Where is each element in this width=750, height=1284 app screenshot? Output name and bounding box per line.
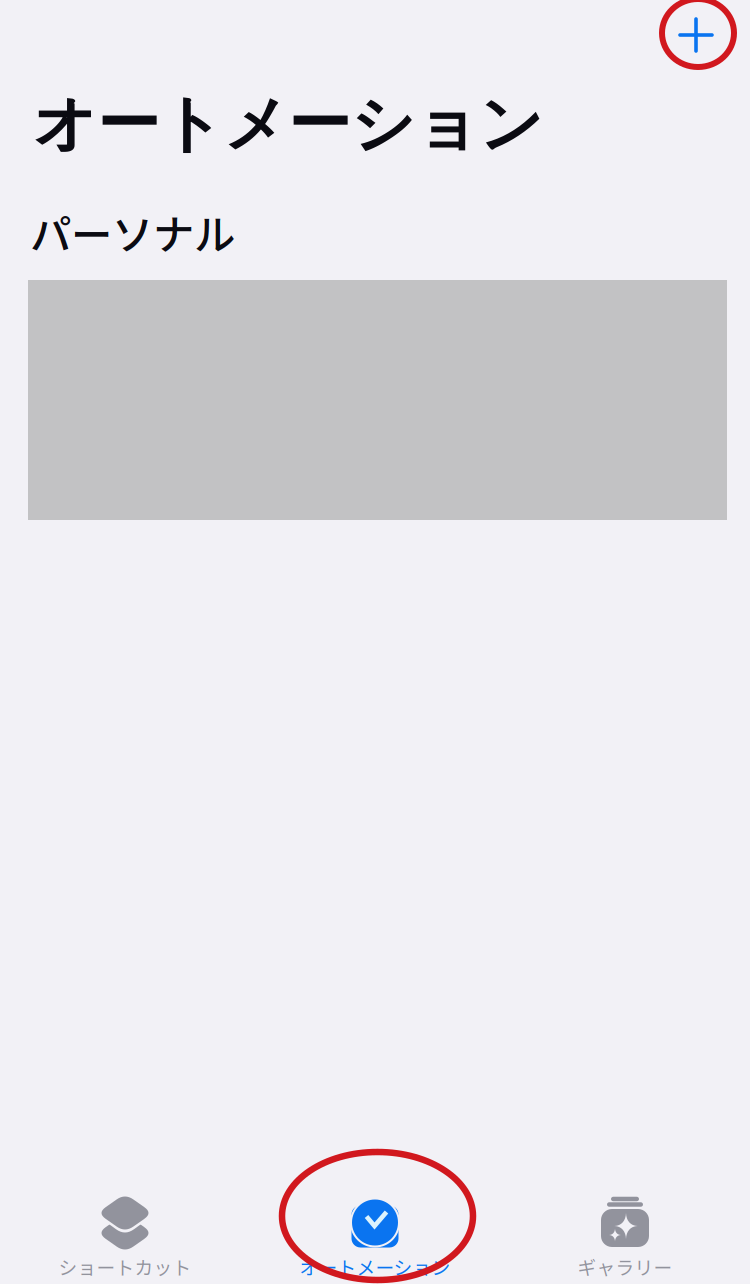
button[interactable]: ショートカット (0, 1195, 250, 1280)
button[interactable]: オートメーション (250, 1195, 500, 1280)
button[interactable]: ギャラリー (500, 1195, 750, 1280)
staticText: オートメーション (299, 1253, 450, 1280)
staticText: ギャラリー (577, 1253, 672, 1280)
button[interactable]: 新規オートメーションを追加 (652, 0, 740, 70)
staticText: ショートカット (58, 1253, 191, 1280)
staticText: パーソナル (30, 202, 235, 262)
staticText: オートメーション (33, 85, 543, 164)
